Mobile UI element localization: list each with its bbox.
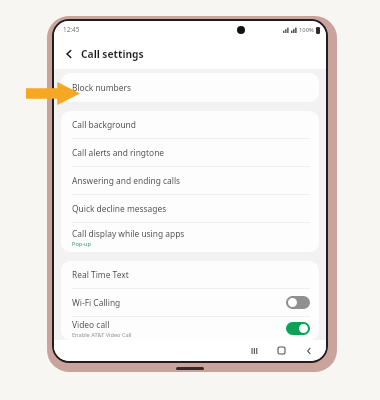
button[interactable]: Video call [61, 317, 319, 340]
staticText: Call settings [81, 47, 144, 61]
staticText: Answering and ending calls [72, 175, 181, 186]
button[interactable]: Switch off [286, 296, 310, 309]
staticText: Block numbers [72, 82, 131, 93]
button[interactable]: Block numbers [61, 73, 319, 102]
staticText: Real Time Text [72, 269, 129, 280]
button[interactable]: Recent apps [241, 340, 268, 361]
button[interactable]: Quick decline messages [61, 195, 319, 222]
staticText: Call display while using apps [72, 228, 185, 239]
staticText: Video call [72, 319, 110, 330]
button[interactable]: Wi-Fi Calling [61, 289, 319, 316]
button[interactable]: Back [295, 340, 322, 361]
staticText: Enable AT&T Video Call [72, 331, 132, 339]
button[interactable]: Call alerts and ringtone [61, 139, 319, 166]
button[interactable]: Call background [61, 111, 319, 138]
button[interactable]: Answering and ending calls [61, 167, 319, 194]
button[interactable]: Home [268, 340, 295, 361]
staticText: Call background [72, 119, 136, 130]
staticText: Pop-up [72, 240, 91, 248]
staticText: Quick decline messages [72, 203, 167, 214]
staticText: Wi-Fi Calling [72, 297, 121, 308]
button[interactable]: Switch on [286, 322, 310, 335]
staticText: Call alerts and ringtone [72, 147, 165, 158]
staticText: 100% [299, 26, 314, 34]
staticText: 12:45 [63, 25, 80, 34]
button[interactable]: Call display while using apps [61, 223, 319, 252]
button[interactable]: Navigate up [59, 44, 78, 63]
button[interactable]: Real Time Text [61, 261, 319, 288]
